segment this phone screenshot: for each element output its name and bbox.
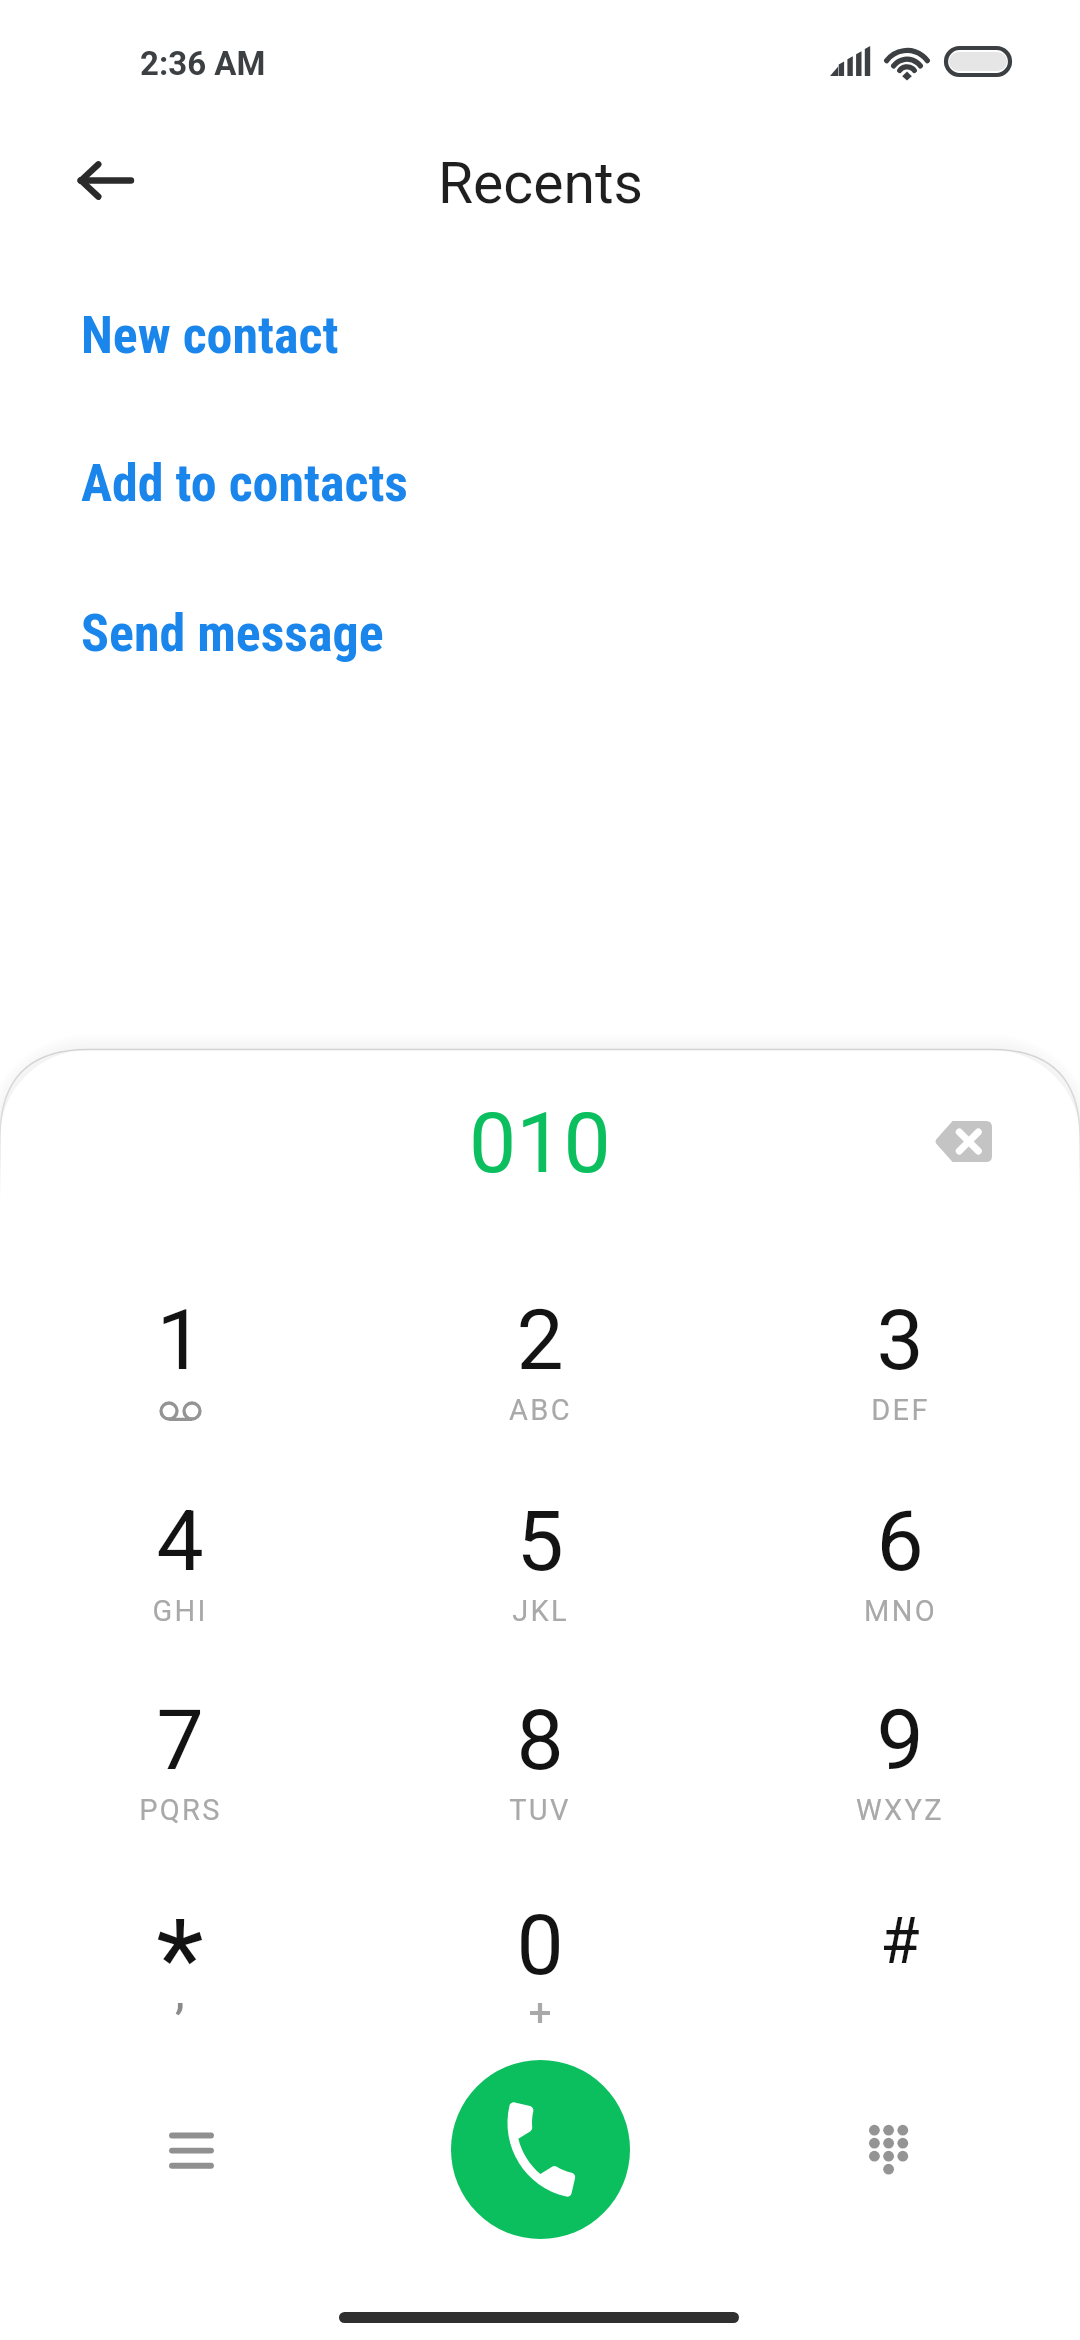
button[interactable]: Call bbox=[451, 2060, 630, 2239]
staticText: Send message bbox=[81, 603, 384, 664]
button[interactable]: 8 bbox=[390, 1651, 690, 1841]
staticText: New contact bbox=[81, 305, 339, 366]
staticText: 8 bbox=[516, 1691, 564, 1789]
staticText: Recents bbox=[438, 150, 643, 217]
button[interactable]: 7 bbox=[30, 1651, 330, 1841]
staticText: 010 bbox=[469, 1094, 611, 1192]
staticText: JKL bbox=[512, 1594, 569, 1628]
button[interactable]: 3 bbox=[750, 1251, 1050, 1441]
staticText: Add to contacts bbox=[81, 453, 408, 514]
button[interactable]: 5 bbox=[390, 1452, 690, 1642]
staticText: 1 bbox=[156, 1291, 204, 1389]
button[interactable]: 1 bbox=[30, 1251, 330, 1441]
staticText: 2:36 AM bbox=[140, 44, 266, 83]
staticText: 6 bbox=[876, 1492, 924, 1590]
button[interactable]: 6 bbox=[750, 1452, 1050, 1642]
staticText: , bbox=[175, 1967, 185, 2019]
staticText: WXYZ bbox=[856, 1793, 944, 1827]
staticText: MNO bbox=[864, 1594, 937, 1628]
button[interactable]: New contact bbox=[0, 292, 1080, 378]
button[interactable]: Add to contacts bbox=[0, 440, 1080, 526]
button[interactable]: Send message bbox=[0, 590, 1080, 676]
staticText: # bbox=[880, 1904, 920, 1979]
staticText: 0 bbox=[516, 1896, 564, 1994]
staticText: 9 bbox=[876, 1691, 924, 1789]
button[interactable]: 9 bbox=[750, 1651, 1050, 1841]
button[interactable]: 4 bbox=[30, 1452, 330, 1642]
staticText: DEF bbox=[871, 1393, 930, 1427]
staticText: * bbox=[156, 1895, 204, 2024]
button[interactable]: Dialpad bbox=[833, 2090, 943, 2200]
button[interactable]: 0 bbox=[390, 1856, 690, 2046]
button[interactable]: Backspace bbox=[908, 1086, 1018, 1196]
staticText: PQRS bbox=[139, 1793, 222, 1827]
staticText: 5 bbox=[516, 1492, 564, 1590]
staticText: TUV bbox=[509, 1793, 571, 1827]
button[interactable]: Back bbox=[53, 128, 157, 232]
staticText: 4 bbox=[156, 1492, 204, 1590]
staticText: ABC bbox=[509, 1393, 572, 1427]
button[interactable]: # bbox=[750, 1856, 1050, 2046]
staticText: 3 bbox=[876, 1291, 924, 1389]
staticText: GHI bbox=[152, 1594, 208, 1628]
button[interactable]: * bbox=[30, 1856, 330, 2046]
button[interactable]: Call log bbox=[136, 2095, 246, 2205]
staticText: 2 bbox=[516, 1291, 564, 1389]
staticText: 7 bbox=[156, 1691, 204, 1789]
button[interactable]: 2 bbox=[390, 1251, 690, 1441]
